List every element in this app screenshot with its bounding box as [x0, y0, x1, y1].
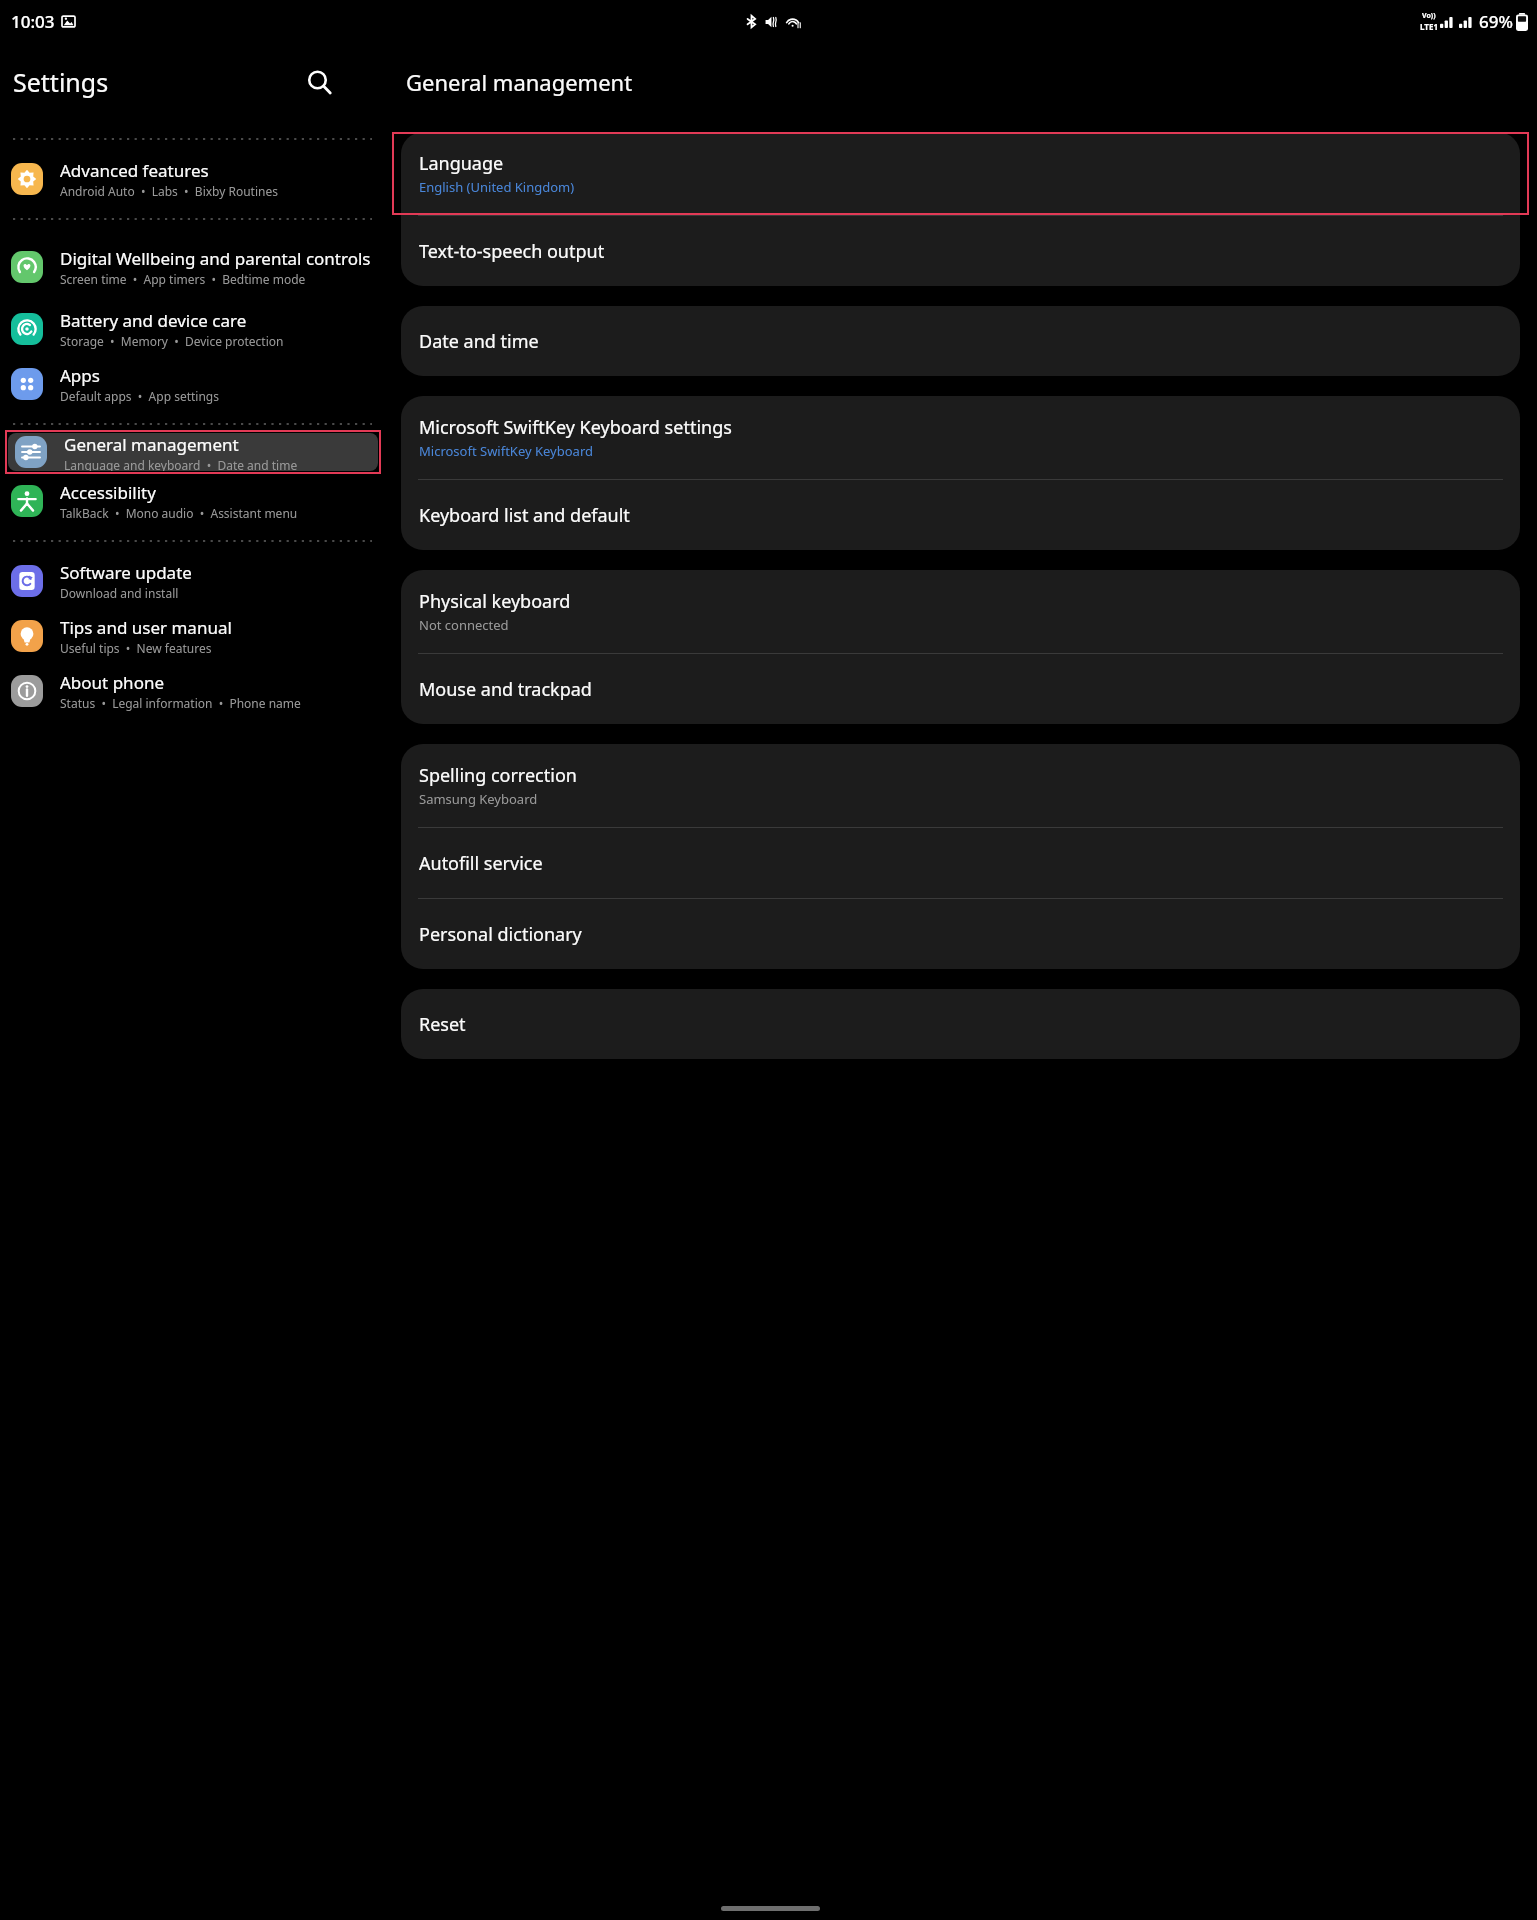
staticText: Advanced features: [60, 159, 209, 182]
staticText: Storage • Memory • Device protection: [60, 333, 284, 349]
staticText: Language and keyboard • Date and time: [64, 457, 298, 471]
staticText: Physical keyboard: [419, 589, 571, 614]
staticText: Not connected: [419, 616, 509, 634]
staticText: Reset: [419, 1012, 466, 1037]
button[interactable]: Personal dictionary: [401, 899, 1520, 969]
button[interactable]: Software update: [0, 558, 385, 604]
staticText: Android Auto • Labs • Bixby Routines: [60, 183, 278, 199]
staticText: Download and install: [60, 585, 179, 601]
button[interactable]: About phone: [0, 668, 385, 714]
button[interactable]: Spelling correction: [401, 744, 1520, 827]
staticText: Microsoft SwiftKey Keyboard settings: [419, 415, 732, 440]
staticText: Useful tips • New features: [60, 640, 212, 656]
button[interactable]: Text-to-speech output: [401, 216, 1520, 286]
button[interactable]: Language: [401, 132, 1520, 215]
staticText: 69%: [1479, 10, 1513, 33]
staticText: Language: [419, 151, 504, 176]
button[interactable]: Search: [297, 60, 341, 104]
button[interactable]: Mouse and trackpad: [401, 654, 1520, 724]
button[interactable]: Reset: [401, 989, 1520, 1059]
staticText: Date and time: [419, 329, 539, 354]
staticText: General management: [64, 433, 239, 456]
button[interactable]: General management: [8, 433, 378, 471]
staticText: Settings: [13, 65, 109, 99]
button[interactable]: Autofill service: [401, 828, 1520, 898]
staticText: Spelling correction: [419, 763, 577, 788]
staticText: Microsoft SwiftKey Keyboard: [419, 442, 594, 460]
staticText: Vo)): [1422, 11, 1436, 21]
staticText: Autofill service: [419, 851, 543, 876]
button[interactable]: Accessibility: [0, 478, 385, 524]
staticText: Battery and device care: [60, 309, 247, 332]
staticText: Samsung Keyboard: [419, 790, 538, 808]
staticText: Text-to-speech output: [419, 239, 605, 264]
staticText: General management: [406, 67, 633, 97]
staticText: Keyboard list and default: [419, 503, 630, 528]
staticText: Mouse and trackpad: [419, 677, 592, 702]
staticText: About phone: [60, 671, 165, 694]
button[interactable]: Microsoft SwiftKey Keyboard settings: [401, 396, 1520, 479]
staticText: LTE1: [1420, 21, 1438, 32]
staticText: Personal dictionary: [419, 922, 582, 947]
staticText: Accessibility: [60, 481, 156, 504]
staticText: Status • Legal information • Phone name: [60, 695, 301, 711]
button[interactable]: Apps: [0, 361, 385, 407]
staticText: 10:03: [11, 10, 55, 33]
button[interactable]: Physical keyboard: [401, 570, 1520, 653]
staticText: Default apps • App settings: [60, 388, 219, 404]
staticText: Digital Wellbeing and parental controls: [60, 247, 371, 270]
staticText: Tips and user manual: [60, 616, 232, 639]
staticText: TalkBack • Mono audio • Assistant menu: [60, 505, 298, 521]
button[interactable]: Date and time: [401, 306, 1520, 376]
button[interactable]: Tips and user manual: [0, 613, 385, 659]
staticText: English (United Kingdom): [419, 178, 575, 196]
staticText: Software update: [60, 561, 192, 584]
staticText: Apps: [60, 364, 100, 387]
button[interactable]: Digital Wellbeing and parental controls: [0, 237, 385, 297]
button[interactable]: Keyboard list and default: [401, 480, 1520, 550]
button[interactable]: Advanced features: [0, 156, 385, 202]
button[interactable]: Battery and device care: [0, 306, 385, 352]
staticText: Screen time • App timers • Bedtime mode: [60, 271, 306, 287]
